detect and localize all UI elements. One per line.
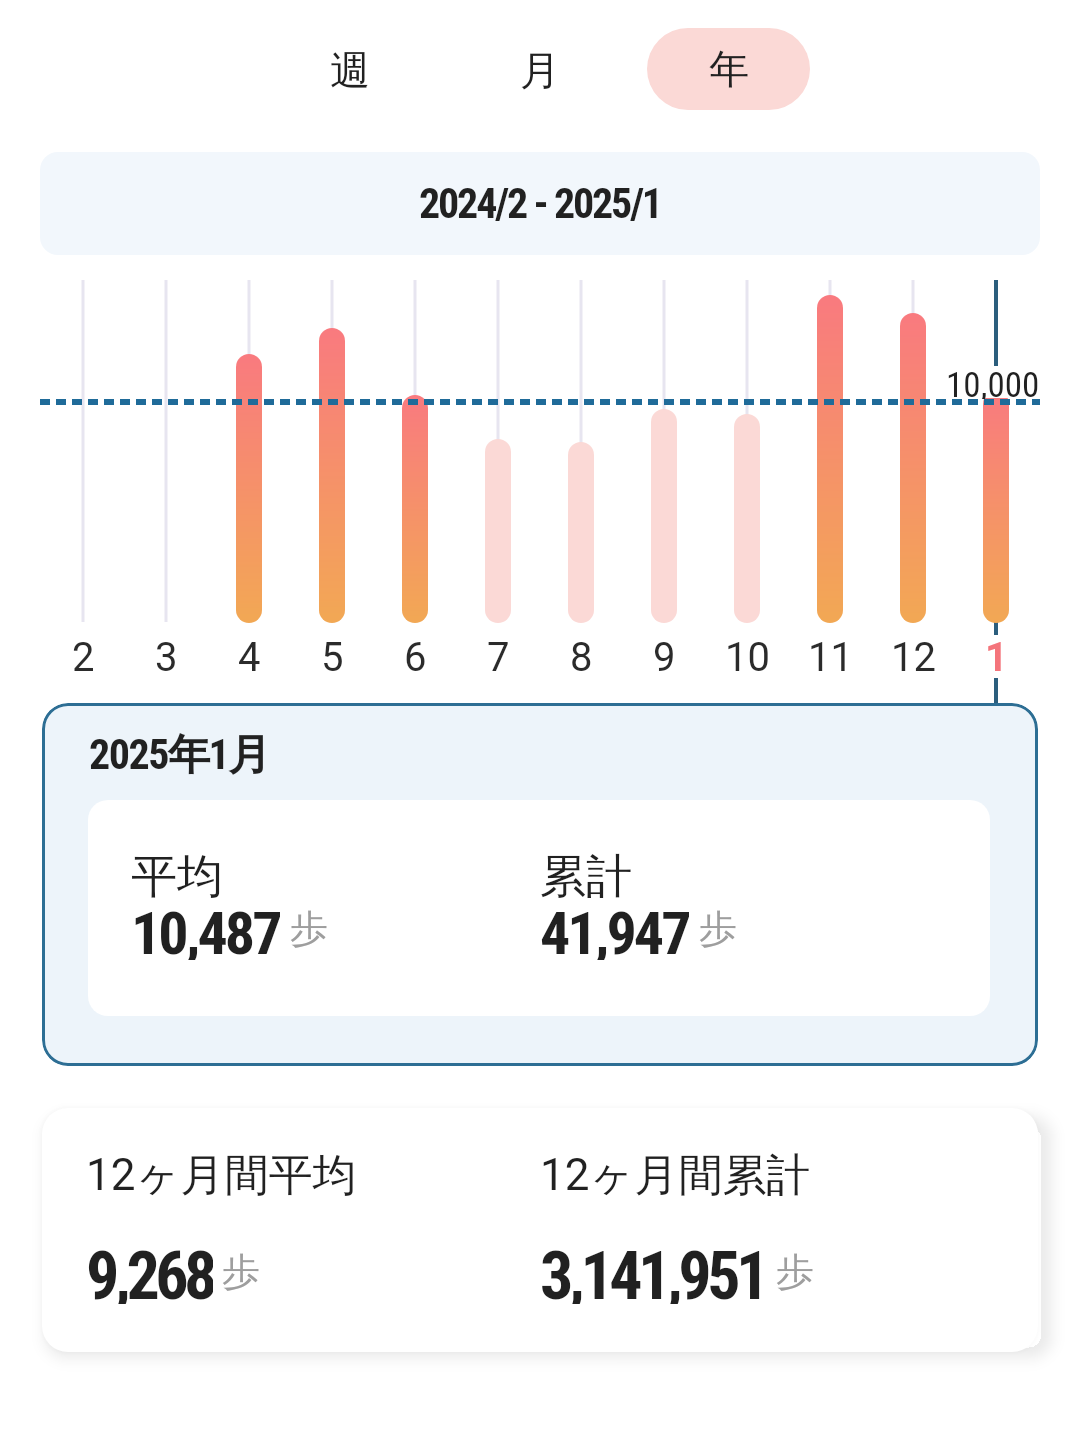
staticText: 2 <box>72 634 95 681</box>
staticText: 12ヶ月間平均 <box>86 1148 357 1202</box>
button[interactable]: 12ヶ月間平均 <box>42 1108 1038 1352</box>
button[interactable]: 週 <box>270 30 430 110</box>
staticText: 月 <box>520 45 560 95</box>
staticText: 歩 <box>222 1248 260 1296</box>
staticText: 歩 <box>776 1248 814 1296</box>
staticText: 3,141,951 <box>540 1238 765 1304</box>
staticText: 年 <box>709 44 749 94</box>
staticText: 10,487 <box>131 898 280 960</box>
staticText: 4 <box>238 634 261 681</box>
staticText: 2024/2 - 2025/1 <box>419 179 661 228</box>
button[interactable]: 2025年1月 <box>42 703 1038 1066</box>
staticText: 歩 <box>290 905 328 953</box>
staticText: 6 <box>404 634 427 681</box>
staticText: 9,268 <box>86 1238 213 1304</box>
staticText: 1 <box>985 634 1008 681</box>
staticText: 9 <box>653 634 676 681</box>
staticText: 8 <box>570 634 593 681</box>
staticText: 10,000 <box>946 365 1040 399</box>
staticText: 12ヶ月間累計 <box>540 1148 811 1202</box>
button[interactable]: 2024/2 - 2025/1 <box>40 152 1040 255</box>
staticText: 歩 <box>699 905 737 953</box>
staticText: 41,947 <box>540 898 689 960</box>
button[interactable]: 月 <box>460 30 620 110</box>
button[interactable]: 年 <box>647 28 810 110</box>
staticText: 11 <box>808 634 853 681</box>
staticText: 5 <box>321 634 344 681</box>
staticText: 累計 <box>540 848 632 898</box>
staticText: 3 <box>155 634 178 681</box>
staticText: 週 <box>330 45 370 95</box>
staticText: 平均 <box>131 848 223 898</box>
staticText: 12 <box>891 634 936 681</box>
staticText: 10 <box>725 634 770 681</box>
staticText: 7 <box>487 634 510 681</box>
staticText: 2025年1月 <box>89 729 269 782</box>
